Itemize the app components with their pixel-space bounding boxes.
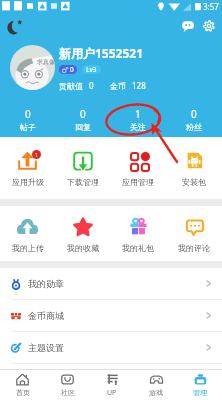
button[interactable]: 我的评论 bbox=[166, 206, 222, 261]
staticText: 0 bbox=[89, 80, 94, 91]
staticText: 0 bbox=[70, 65, 74, 74]
staticText: 回复 bbox=[75, 122, 91, 131]
button[interactable]: 首页 bbox=[0, 370, 45, 400]
staticText: 我的评论 bbox=[178, 243, 210, 253]
staticText: 1 bbox=[135, 107, 141, 121]
button[interactable]: 我的上传 bbox=[0, 206, 55, 261]
button[interactable]: 我的礼包 bbox=[110, 206, 166, 261]
staticText: Lv3 bbox=[86, 65, 97, 74]
button[interactable]: 0 bbox=[55, 107, 110, 131]
button[interactable]: Messages bbox=[177, 15, 198, 36]
button[interactable]: 社区 bbox=[45, 370, 90, 400]
button[interactable]: Settings bbox=[198, 15, 219, 36]
staticText: 3:57 bbox=[203, 1, 219, 12]
staticText: UP bbox=[107, 388, 117, 398]
button[interactable]: 我的勋章 bbox=[0, 268, 222, 299]
staticText: 应用升级 bbox=[12, 177, 44, 187]
button[interactable]: 安装包 bbox=[166, 137, 222, 199]
staticText: 帖子 bbox=[20, 122, 36, 131]
staticText: 0 bbox=[191, 107, 197, 121]
staticText: 首页 bbox=[16, 388, 30, 397]
button[interactable]: 管理 bbox=[178, 370, 222, 400]
staticText: 我的礼包 bbox=[122, 243, 154, 253]
staticText: 0 bbox=[25, 107, 31, 121]
staticText: 游戏 bbox=[149, 388, 163, 397]
button[interactable]: UP bbox=[90, 370, 134, 400]
staticText: 粉丝 bbox=[186, 122, 202, 131]
staticText: 我的上传 bbox=[12, 243, 44, 253]
staticText: 我的勋章 bbox=[28, 278, 64, 289]
button[interactable]: 游戏 bbox=[134, 370, 178, 400]
staticText: 应用管理 bbox=[122, 177, 154, 187]
staticText: 0 bbox=[80, 107, 86, 121]
staticText: 主题设置 bbox=[28, 342, 64, 353]
staticText: 金币 bbox=[110, 81, 126, 91]
staticText: 金币商城 bbox=[28, 310, 64, 321]
button[interactable]: 主题设置 bbox=[0, 332, 222, 363]
staticText: 1 bbox=[35, 151, 39, 158]
button[interactable]: 1 bbox=[0, 137, 55, 199]
staticText: 社区 bbox=[61, 388, 75, 397]
button[interactable]: 0 bbox=[0, 107, 55, 131]
button[interactable]: 金币商城 bbox=[0, 300, 222, 331]
staticText: 关注 bbox=[130, 122, 146, 131]
staticText: 下载管理 bbox=[67, 177, 99, 187]
staticText: 贡献值 bbox=[59, 81, 83, 91]
staticText: 安装包 bbox=[182, 177, 206, 187]
button[interactable]: 1 bbox=[110, 107, 166, 131]
button[interactable]: 下载管理 bbox=[55, 137, 110, 199]
button[interactable]: 0 bbox=[166, 107, 222, 131]
staticText: 求真像 bbox=[37, 58, 55, 66]
staticText: 128 bbox=[132, 80, 146, 91]
staticText: 新用户1552521 bbox=[59, 45, 144, 61]
button[interactable]: 应用管理 bbox=[110, 137, 166, 199]
staticText: 管理 bbox=[193, 388, 207, 397]
staticText: 我的收藏 bbox=[67, 243, 99, 253]
button[interactable]: Avatar bbox=[10, 45, 55, 90]
button[interactable]: 我的收藏 bbox=[55, 206, 110, 261]
